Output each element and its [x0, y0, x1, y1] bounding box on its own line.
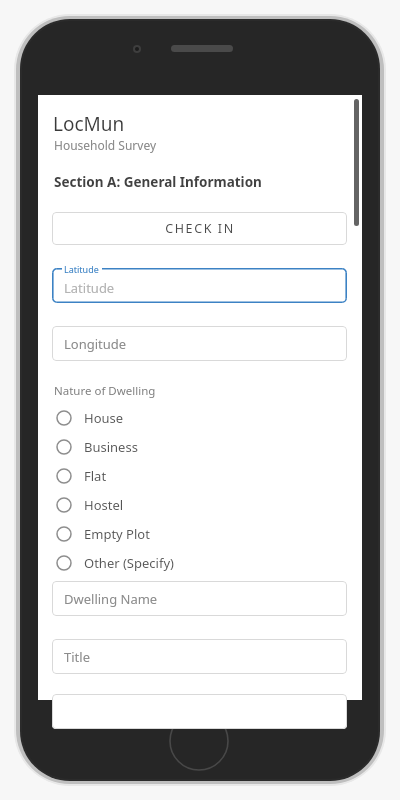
other: Scroll position [354, 99, 359, 226]
staticText: Empty Plot [84, 525, 150, 543]
staticText: Title [64, 648, 90, 666]
button[interactable]: Empty Plot [54, 519, 334, 548]
staticText: CHECK IN [165, 220, 235, 237]
button[interactable]: Hostel [54, 490, 334, 519]
staticText: Latitude [64, 279, 115, 297]
button[interactable]: Longitude [52, 326, 347, 361]
staticText: Nature of Dwelling [54, 383, 156, 399]
staticText: Flat [84, 467, 107, 485]
button[interactable]: Latitude [52, 268, 347, 303]
staticText: Household Survey [54, 137, 157, 153]
staticText: Hostel [84, 496, 124, 514]
staticText: Dwelling Name [64, 590, 158, 608]
button[interactable]: Dwelling Name [52, 581, 347, 616]
button[interactable]: Business [54, 432, 334, 461]
button[interactable]: Other (Specify) [54, 548, 334, 577]
button[interactable]: Flat [54, 461, 334, 490]
button[interactable]: CHECK IN [52, 212, 347, 245]
staticText: Section A: General Information [54, 173, 262, 191]
staticText: Latitude [64, 263, 99, 275]
staticText: House [84, 409, 124, 427]
button[interactable]: Title [52, 639, 347, 674]
staticText: LocMun [53, 111, 125, 137]
staticText: Longitude [64, 335, 127, 353]
button[interactable]: House [54, 403, 334, 432]
staticText: Business [84, 438, 138, 456]
button[interactable] [52, 694, 347, 729]
staticText: Other (Specify) [84, 554, 174, 572]
